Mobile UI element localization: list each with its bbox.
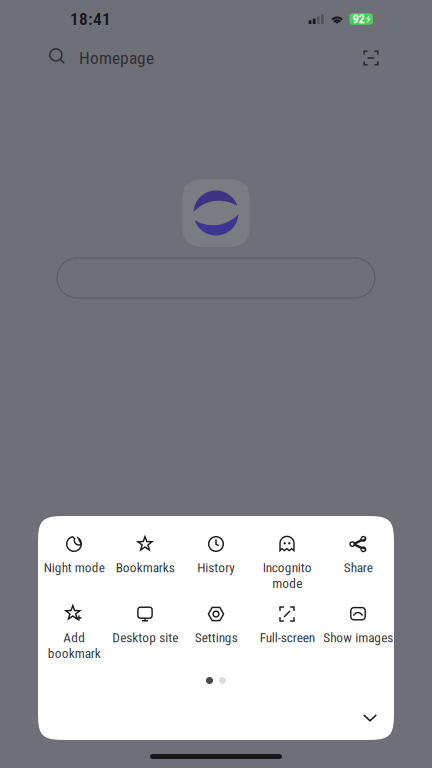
button[interactable]: Show images	[322, 603, 393, 667]
staticText: Settings	[194, 630, 237, 646]
button[interactable]: Settings	[180, 603, 251, 667]
button[interactable]: Collapse menu	[350, 705, 390, 731]
button[interactable]: Add bookmark	[38, 603, 109, 667]
button[interactable]: Tabs	[351, 38, 391, 78]
staticText: Desktop site	[112, 630, 178, 646]
staticText: 18:41	[70, 9, 111, 29]
staticText: Full-screen	[259, 630, 314, 646]
staticText: History	[197, 560, 235, 576]
button[interactable]: Full-screen	[251, 603, 322, 667]
staticText: Night mode	[43, 560, 104, 576]
staticText: Show images	[323, 630, 393, 646]
button[interactable]: Night mode	[38, 533, 109, 597]
button[interactable]: History	[180, 533, 251, 597]
button[interactable]: Share	[322, 533, 393, 597]
button[interactable]: Desktop site	[109, 603, 180, 667]
button[interactable]: Bookmarks	[109, 533, 180, 597]
button[interactable]: Homepage	[48, 38, 351, 78]
button[interactable]: Incognito mode	[251, 533, 322, 597]
staticText: Incognito mode	[262, 560, 311, 591]
staticText: Bookmarks	[115, 560, 174, 576]
staticText: Share	[343, 560, 372, 576]
staticText: Add bookmark	[47, 630, 100, 661]
staticText: Homepage	[79, 48, 154, 68]
staticText: 92	[352, 12, 364, 26]
